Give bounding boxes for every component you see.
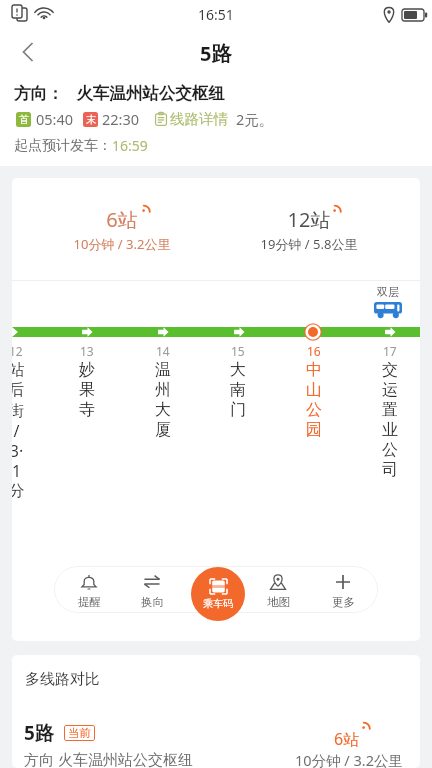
staticText: 双层 — [377, 285, 399, 299]
staticText: 13 — [80, 343, 94, 359]
staticText: 方向 火车温州站公交枢纽 — [24, 749, 193, 768]
button[interactable]: 地图 — [246, 566, 310, 613]
staticText: 换向 — [141, 595, 164, 609]
button[interactable]: 更多 — [311, 566, 375, 613]
staticText: 6站 — [334, 728, 360, 750]
staticText: 提醒 — [78, 595, 101, 609]
staticText: 16:51 — [198, 5, 234, 24]
staticText: 05:40 — [36, 109, 74, 129]
staticText: 17 — [383, 343, 397, 359]
staticText: 5路 — [200, 40, 232, 67]
button[interactable]: 乘车码 — [191, 567, 245, 621]
button[interactable]: 5路 — [12, 715, 420, 768]
button[interactable]: 16 — [276, 343, 352, 440]
staticText: 14 — [156, 343, 170, 359]
staticText: 更多 — [332, 595, 355, 609]
staticText: 末 — [86, 113, 96, 126]
button[interactable]: 换向 — [120, 566, 184, 613]
staticText: 乘车码 — [203, 597, 233, 610]
staticText: 6站 — [52, 206, 192, 233]
staticText: 12 — [12, 343, 23, 359]
staticText: 大 南 门 — [230, 360, 246, 420]
staticText: 2元。 — [236, 109, 274, 129]
button[interactable]: 15 — [200, 343, 276, 420]
staticText: 15 — [231, 343, 245, 359]
staticText: 首 — [19, 113, 29, 126]
staticText: 5路 — [24, 720, 54, 746]
staticText: 起点预计发车： — [14, 137, 112, 155]
button[interactable]: 13 — [49, 343, 125, 420]
button[interactable]: 提醒 — [57, 566, 121, 613]
staticText: 16 — [307, 343, 321, 359]
staticText: 线路详情 — [170, 110, 228, 128]
staticText: 当前 — [68, 726, 91, 740]
button[interactable]: 17 — [352, 343, 420, 480]
button[interactable]: Back — [6, 32, 48, 74]
staticText: 10分钟 / 3.2公里 — [52, 235, 192, 253]
button[interactable]: 6站 — [52, 178, 192, 280]
staticText: 妙 果 寺 — [79, 360, 95, 420]
staticText: 站后街 / 3·1分 — [12, 360, 26, 501]
staticText: 交 运 置 业 公 司 — [382, 360, 398, 480]
button[interactable]: 14 — [125, 343, 201, 440]
staticText: 22:30 — [102, 109, 140, 129]
staticText: 温 州 大 厦 — [155, 360, 171, 440]
staticText: 12站 — [239, 206, 379, 233]
staticText: 地图 — [267, 595, 290, 609]
staticText: 10分钟 / 3.2公里 — [295, 750, 403, 768]
staticText: 16:59 — [112, 136, 148, 155]
staticText: 中 山 公 园 — [306, 360, 322, 440]
staticText: 19分钟 / 5.8公里 — [239, 235, 379, 253]
button[interactable]: 线路详情 — [154, 110, 228, 128]
staticText: 多线路对比 — [25, 670, 100, 689]
button[interactable]: 12站 — [239, 178, 379, 280]
staticText: 方向： 火车温州站公交枢纽 — [14, 81, 225, 104]
